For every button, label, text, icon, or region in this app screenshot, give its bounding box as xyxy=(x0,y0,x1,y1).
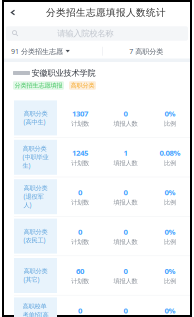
staticText: 0 xyxy=(78,226,82,237)
staticText: 0% xyxy=(164,226,175,237)
staticText: 请输入院校名称 xyxy=(57,28,113,39)
staticText: 填报人数 xyxy=(113,120,137,128)
staticText: 1245 xyxy=(72,148,88,158)
staticText: 比例 xyxy=(164,159,176,167)
staticText: 高职分类 xyxy=(70,82,94,89)
staticText: 7 高职分类 xyxy=(129,46,163,56)
staticText: 60 xyxy=(76,266,84,276)
staticText: 高职分类 (退役军 人) xyxy=(23,184,47,209)
staticText: 比例 xyxy=(164,198,176,206)
staticText: 0 xyxy=(123,226,127,237)
staticText: 计划数 xyxy=(71,238,89,246)
staticText: 0 xyxy=(123,187,127,197)
staticText: 高职分类 (其它) xyxy=(23,267,47,284)
staticText: 0% xyxy=(164,187,175,197)
staticText: 1307 xyxy=(72,108,88,119)
staticText: 0 xyxy=(123,305,127,316)
button[interactable]: 返回 xyxy=(4,2,22,23)
staticText: 0% xyxy=(164,266,175,276)
staticText: 安徽职业技术学院 xyxy=(31,68,95,78)
staticText: 0% xyxy=(164,305,175,316)
staticText: 比例 xyxy=(164,120,176,128)
staticText: 高职校单 考单招(高 中生) xyxy=(22,302,48,317)
staticText: 计划数 xyxy=(71,159,89,167)
staticText: 填报人数 xyxy=(113,238,137,246)
staticText: 比例 xyxy=(164,277,176,285)
staticText: 分类招生志愿填报人数统计 xyxy=(46,6,166,19)
staticText: 1 xyxy=(123,148,127,158)
button[interactable]: 请输入院校名称 xyxy=(4,23,190,44)
staticText: 分类招生志愿填报 xyxy=(14,82,62,89)
staticText: 高职分类 (高中生) xyxy=(23,110,47,126)
staticText: 比例 xyxy=(164,238,176,246)
staticText: 0 xyxy=(123,266,127,276)
staticText: 填报人数 xyxy=(113,277,137,285)
staticText: 填报人数 xyxy=(113,159,137,167)
staticText: 填报人数 xyxy=(113,198,137,206)
staticText: 91 分类招生志愿 xyxy=(11,46,63,56)
staticText: 高职分类 (中职毕业 生) xyxy=(22,145,48,170)
staticText: 0 xyxy=(123,108,127,119)
staticText: 计划数 xyxy=(71,277,89,285)
staticText: 0.08% xyxy=(159,148,180,158)
staticText: 0 xyxy=(78,305,82,316)
button[interactable]: 7 高职分类 xyxy=(103,44,190,58)
button[interactable]: 91 分类招生志愿 xyxy=(4,44,102,58)
staticText: 计划数 xyxy=(71,120,89,128)
staticText: 0% xyxy=(164,108,175,119)
staticText: 计划数 xyxy=(71,198,89,206)
staticText: 高职分类 (农民工) xyxy=(23,228,47,244)
staticText: 0 xyxy=(78,187,82,197)
